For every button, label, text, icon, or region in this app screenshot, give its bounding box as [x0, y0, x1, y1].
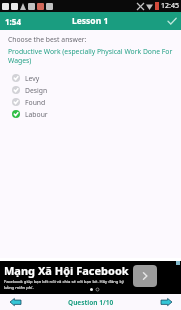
- staticText: 12:45: [161, 1, 179, 11]
- staticText: Lesson 1: [72, 15, 109, 27]
- staticText: 1:54: [5, 16, 21, 27]
- staticText: Productive Work (especially Physical Wor…: [8, 47, 173, 65]
- button[interactable]: Next question: [151, 294, 181, 310]
- staticText: Labour: [25, 110, 48, 119]
- button[interactable]: Design: [8, 84, 173, 96]
- button[interactable]: Submit answer: [163, 12, 181, 30]
- button[interactable]: Levy: [8, 72, 173, 84]
- staticText: Choose the best answer:: [8, 35, 87, 44]
- staticText: Levy: [25, 74, 40, 83]
- button[interactable]: Advertisement: [0, 258, 181, 294]
- staticText: Found: [25, 98, 46, 107]
- button[interactable]: Found: [8, 96, 173, 108]
- button[interactable]: Install: [133, 265, 157, 287]
- button[interactable]: Labour: [8, 108, 173, 120]
- staticText: Question 1/10: [68, 298, 114, 307]
- button[interactable]: Previous question: [0, 294, 30, 310]
- staticText: Design: [25, 86, 48, 95]
- staticText: Facebook giúp bạn kết nối và chia sẻ với…: [4, 279, 132, 290]
- staticText: Mạng Xã Hội Facebook: [4, 263, 129, 278]
